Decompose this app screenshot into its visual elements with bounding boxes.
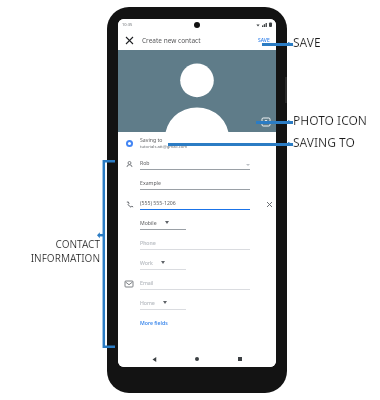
staticText: PHOTO ICON	[293, 112, 367, 128]
staticText: CONTACT	[55, 237, 100, 251]
staticText: Mobile	[140, 219, 157, 226]
button[interactable]: Mobile	[118, 214, 276, 234]
staticText: SAVING TO	[293, 134, 355, 150]
staticText: Example	[140, 179, 161, 186]
staticText: Saving to	[140, 136, 163, 143]
button[interactable]: Back	[147, 352, 161, 366]
button[interactable]: Rob	[118, 154, 276, 174]
button[interactable]: Example	[118, 174, 276, 194]
button[interactable]: SAVE	[258, 37, 270, 44]
button[interactable]: Close	[122, 33, 136, 47]
staticText: tutorials.att@gmail.com	[140, 144, 188, 150]
button[interactable]: Home	[190, 352, 204, 366]
button[interactable]: Recents	[233, 352, 247, 366]
button[interactable]: (555) 555-1206	[118, 194, 276, 214]
button[interactable]: Email	[118, 274, 276, 294]
staticText: Work	[140, 259, 153, 266]
staticText: SAVE	[258, 37, 270, 44]
staticText: Rob	[140, 159, 150, 166]
staticText: More fields	[140, 319, 168, 326]
staticText: INFORMATION	[30, 251, 100, 265]
staticText: Create new contact	[142, 36, 201, 45]
staticText: Email	[140, 279, 154, 286]
button[interactable]: Phone	[118, 234, 276, 254]
button[interactable]: Saving to	[118, 132, 276, 154]
staticText: Home	[140, 299, 155, 306]
button[interactable]: Clear	[264, 199, 274, 209]
staticText: Phone	[140, 239, 156, 246]
button[interactable]: Home	[118, 294, 276, 314]
staticText: 10:35	[122, 22, 133, 27]
button[interactable]: More fields	[118, 314, 276, 330]
button[interactable]: Add photo	[261, 117, 271, 127]
button[interactable]: Work	[118, 254, 276, 274]
staticText: (555) 555-1206	[140, 199, 176, 206]
staticText: SAVE	[293, 34, 321, 50]
